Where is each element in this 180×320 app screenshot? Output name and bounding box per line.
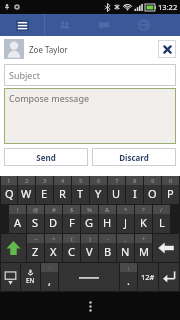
staticText: E [41, 186, 48, 201]
button[interactable]: @ [27, 205, 44, 233]
button[interactable]: 12# [138, 263, 158, 291]
button[interactable]: ~ [27, 234, 44, 262]
button[interactable]: 7 [108, 176, 125, 204]
staticText: D [49, 215, 58, 230]
button[interactable]: ) [81, 234, 98, 262]
staticText: X [50, 244, 57, 259]
staticText: 5 [79, 177, 83, 185]
button[interactable]: $ [63, 205, 80, 233]
button[interactable]: 6 [90, 176, 107, 204]
button[interactable]: ^ [45, 234, 62, 262]
button[interactable]: 0 [162, 176, 179, 204]
staticText: A [14, 215, 22, 230]
staticText: J [124, 215, 128, 230]
button[interactable]: / [153, 205, 170, 233]
button[interactable]: 2 [18, 176, 35, 204]
staticText: Zoe Taylor [29, 44, 68, 55]
staticText: & [105, 206, 110, 214]
button[interactable]: Messages [84, 14, 124, 36]
staticText: % [87, 206, 92, 214]
staticText: ! [17, 206, 19, 214]
button[interactable]: + [135, 234, 152, 262]
staticText: L [159, 215, 165, 230]
button[interactable]: ! [9, 205, 26, 233]
staticText: V [86, 244, 93, 259]
staticText: 13:22 [158, 2, 178, 12]
button[interactable]: 9 [144, 176, 161, 204]
staticText: C [68, 244, 75, 259]
staticText: M [139, 244, 149, 259]
staticText: * [124, 206, 128, 214]
staticText: Z [32, 244, 39, 259]
button[interactable]: : [41, 263, 58, 291]
staticText: , [48, 273, 51, 288]
button[interactable]: ; [120, 263, 137, 291]
button[interactable]: Backspace [153, 234, 179, 262]
staticText: ) [89, 235, 91, 243]
staticText: ( [71, 235, 73, 243]
staticText: # [52, 206, 56, 214]
button[interactable]: 5 [72, 176, 89, 204]
staticText: ^ [52, 235, 56, 243]
staticText: P [167, 186, 174, 201]
button[interactable]: 4 [54, 176, 71, 204]
button[interactable]: Enter [159, 263, 179, 291]
staticText: Discard [119, 152, 149, 163]
staticText: I [133, 186, 137, 201]
staticText: Send [36, 152, 56, 163]
button[interactable]: 8 [126, 176, 143, 204]
button[interactable]: 3 [36, 176, 53, 204]
staticText: 8 [133, 177, 137, 185]
staticText: : [49, 264, 51, 272]
button[interactable]: _ [117, 234, 134, 262]
staticText: 3 [43, 177, 47, 185]
staticText: 12# [141, 272, 155, 282]
staticText: 9 [151, 177, 155, 185]
button[interactable]: # [45, 205, 62, 233]
staticText: $ [70, 206, 74, 214]
staticText: 4 [61, 177, 65, 185]
button[interactable]: % [81, 205, 98, 233]
button[interactable]: Send [4, 148, 88, 166]
staticText: Subject [9, 69, 41, 81]
button[interactable]: * [117, 205, 134, 233]
button[interactable]: ? [135, 205, 152, 233]
staticText: . [127, 273, 130, 288]
button[interactable]: Space [59, 263, 119, 291]
button[interactable]: & [99, 205, 116, 233]
button[interactable]: Discard [92, 148, 176, 166]
staticText: Q [5, 186, 14, 201]
button[interactable]: Shift [1, 234, 26, 262]
staticText: 2 [25, 177, 29, 185]
staticText: _ [124, 235, 127, 243]
button[interactable]: Hide keyboard [1, 263, 20, 291]
staticText: - [107, 235, 109, 243]
button[interactable]: Compose message [4, 88, 176, 144]
staticText: Compose message [9, 92, 90, 104]
staticText: S [32, 215, 39, 230]
button[interactable]: Notifications [124, 14, 164, 36]
staticText: ? [142, 206, 145, 214]
staticText: G [85, 215, 94, 230]
staticText: + [142, 235, 146, 243]
button[interactable]: Menu [0, 14, 44, 36]
staticText: ~ [34, 235, 38, 243]
staticText: R [59, 186, 66, 201]
staticText: EN [26, 276, 35, 285]
staticText: / [160, 206, 163, 214]
button[interactable]: Subject [4, 64, 176, 86]
button[interactable]: ( [63, 234, 80, 262]
staticText: B [104, 244, 112, 259]
button[interactable]: More options [78, 294, 102, 318]
button[interactable]: Friend requests [45, 14, 84, 36]
staticText: 1 [7, 177, 11, 185]
button[interactable]: 1 [1, 176, 17, 204]
staticText: @ [33, 206, 39, 214]
button[interactable]: Remove recipient [158, 40, 176, 58]
staticText: W [21, 186, 32, 201]
button[interactable]: - [99, 234, 116, 262]
button[interactable]: Voice input [21, 263, 40, 291]
staticText: H [103, 215, 112, 230]
staticText: Y [95, 186, 102, 201]
staticText: N [121, 244, 130, 259]
